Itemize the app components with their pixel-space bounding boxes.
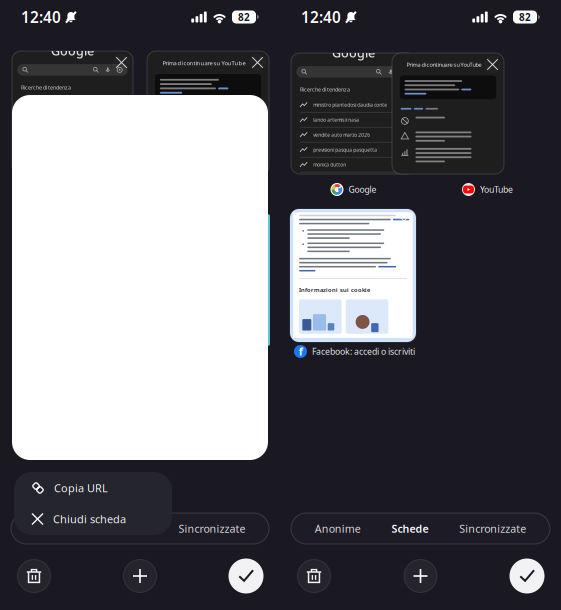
button[interactable]: Chiudi tutte le schede bbox=[12, 554, 56, 598]
button[interactable]: Nuova scheda bbox=[398, 554, 442, 598]
staticText: vendite auto marzo 2026 bbox=[313, 132, 370, 138]
staticText: 82 bbox=[519, 10, 531, 24]
staticText: previsioni pasqua pasquetta bbox=[313, 147, 377, 153]
staticText: Copia URL bbox=[54, 481, 108, 495]
staticText: Facebook: accedi o iscriviti bbox=[312, 346, 415, 357]
staticText: 12:40 bbox=[301, 7, 341, 27]
button[interactable]: Fine bbox=[224, 554, 268, 598]
button[interactable]: Sincronizzate bbox=[452, 513, 533, 544]
staticText: Sincronizzate bbox=[178, 521, 245, 536]
staticText: Sincronizzate bbox=[459, 521, 526, 536]
button[interactable]: Schede bbox=[104, 513, 155, 544]
staticText: Schede bbox=[391, 521, 428, 536]
button[interactable]: Anonime bbox=[27, 513, 87, 544]
staticText: lancio artemis ii nasa bbox=[313, 117, 359, 123]
staticText: Google bbox=[332, 44, 375, 61]
staticText: ministro piantedosi claudia conte bbox=[313, 102, 387, 108]
staticText: YouTube bbox=[480, 184, 513, 195]
staticText: Ricerche di tendenza bbox=[21, 84, 71, 91]
button[interactable]: Fine bbox=[505, 554, 549, 598]
staticText: Prima di continuare su YouTube bbox=[407, 61, 482, 68]
button[interactable]: Copia URL bbox=[14, 472, 172, 503]
staticText: monica dutton bbox=[313, 161, 346, 168]
staticText: Google bbox=[348, 184, 376, 195]
staticText: Anonime bbox=[34, 521, 80, 536]
button[interactable]: Chiudi tutte le schede bbox=[292, 554, 336, 598]
staticText: f bbox=[299, 344, 303, 358]
staticText: Chiudi scheda bbox=[53, 512, 126, 526]
button[interactable]: Schede bbox=[384, 513, 435, 544]
staticText: Google bbox=[51, 42, 94, 59]
staticText: Prima di continuare su YouTube bbox=[162, 59, 245, 67]
button[interactable]: Chiudi scheda bbox=[113, 54, 130, 71]
button[interactable]: Chiudi scheda bbox=[395, 212, 413, 230]
staticText: Schede bbox=[111, 521, 148, 536]
button[interactable]: Chiudi scheda bbox=[249, 54, 266, 71]
button[interactable]: Sincronizzate bbox=[171, 513, 252, 544]
staticText: 82 bbox=[238, 10, 250, 24]
button[interactable]: Chiudi scheda bbox=[396, 56, 413, 73]
button[interactable]: Chiudi scheda bbox=[14, 503, 172, 534]
staticText: Informazioni sui cookie bbox=[299, 286, 370, 294]
button[interactable]: Chiudi scheda bbox=[484, 56, 501, 73]
staticText: Anonime bbox=[315, 521, 361, 536]
staticText: Ricerche di tendenza bbox=[300, 86, 350, 93]
staticText: 12:40 bbox=[21, 7, 61, 27]
button[interactable]: Anonime bbox=[308, 513, 368, 544]
button[interactable]: Nuova scheda bbox=[118, 554, 162, 598]
